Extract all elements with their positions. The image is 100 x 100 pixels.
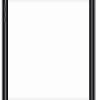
button[interactable]: Volume up — [0, 6, 5, 8]
button[interactable]: Phone screen — [0, 0, 82, 100]
